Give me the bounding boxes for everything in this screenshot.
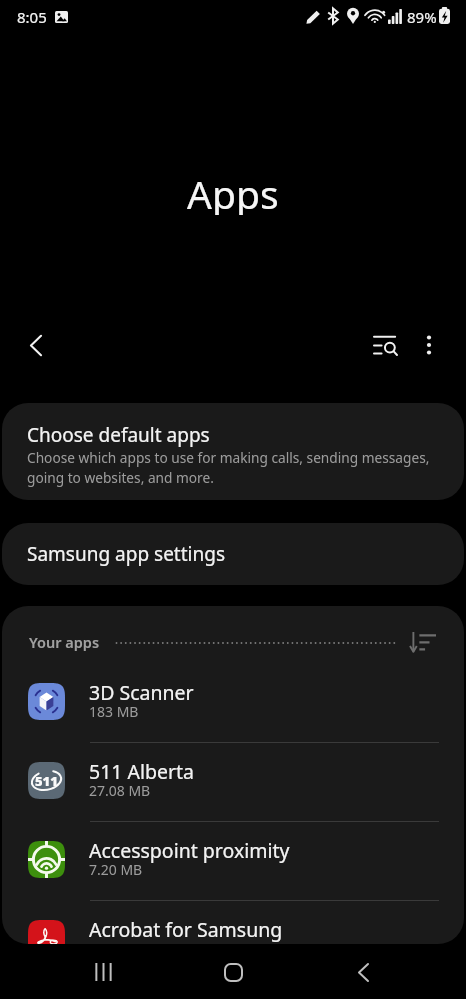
button[interactable]: Home [208,947,258,997]
staticText: Samsung app settings [27,541,225,567]
button[interactable]: Navigate up [13,323,58,367]
button[interactable]: Choose default apps [2,403,464,500]
staticText: Choose default apps [27,422,210,448]
button[interactable]: More options [407,323,451,367]
staticText: 511 [35,772,58,790]
staticText: Acrobat for Samsung [89,916,283,943]
button[interactable]: Search [363,323,407,367]
button[interactable]: Recent apps [78,947,128,997]
staticText: 89% [407,7,437,27]
staticText: 27.08 MB [89,781,151,800]
staticText: 183 MB [89,702,139,721]
staticText: Accesspoint proximity [89,837,290,864]
button[interactable]: Samsung app settings [2,523,464,585]
staticText: 511 Alberta [89,758,195,785]
staticText: 3D Scanner [89,679,194,706]
button[interactable]: Accesspoint proximity [2,822,464,901]
staticText: Your apps [29,632,100,652]
staticText: 7.20 MB [89,860,143,879]
button[interactable]: 3D Scanner [2,664,464,743]
staticText: Apps [187,167,279,215]
button[interactable]: 511 [2,743,464,822]
staticText: 8:05 [17,7,47,27]
button[interactable]: Acrobat for Samsung [2,901,464,944]
button[interactable]: Sort [406,625,440,659]
staticText: Choose which apps to use for making call… [27,448,443,487]
button[interactable]: Back [338,947,388,997]
